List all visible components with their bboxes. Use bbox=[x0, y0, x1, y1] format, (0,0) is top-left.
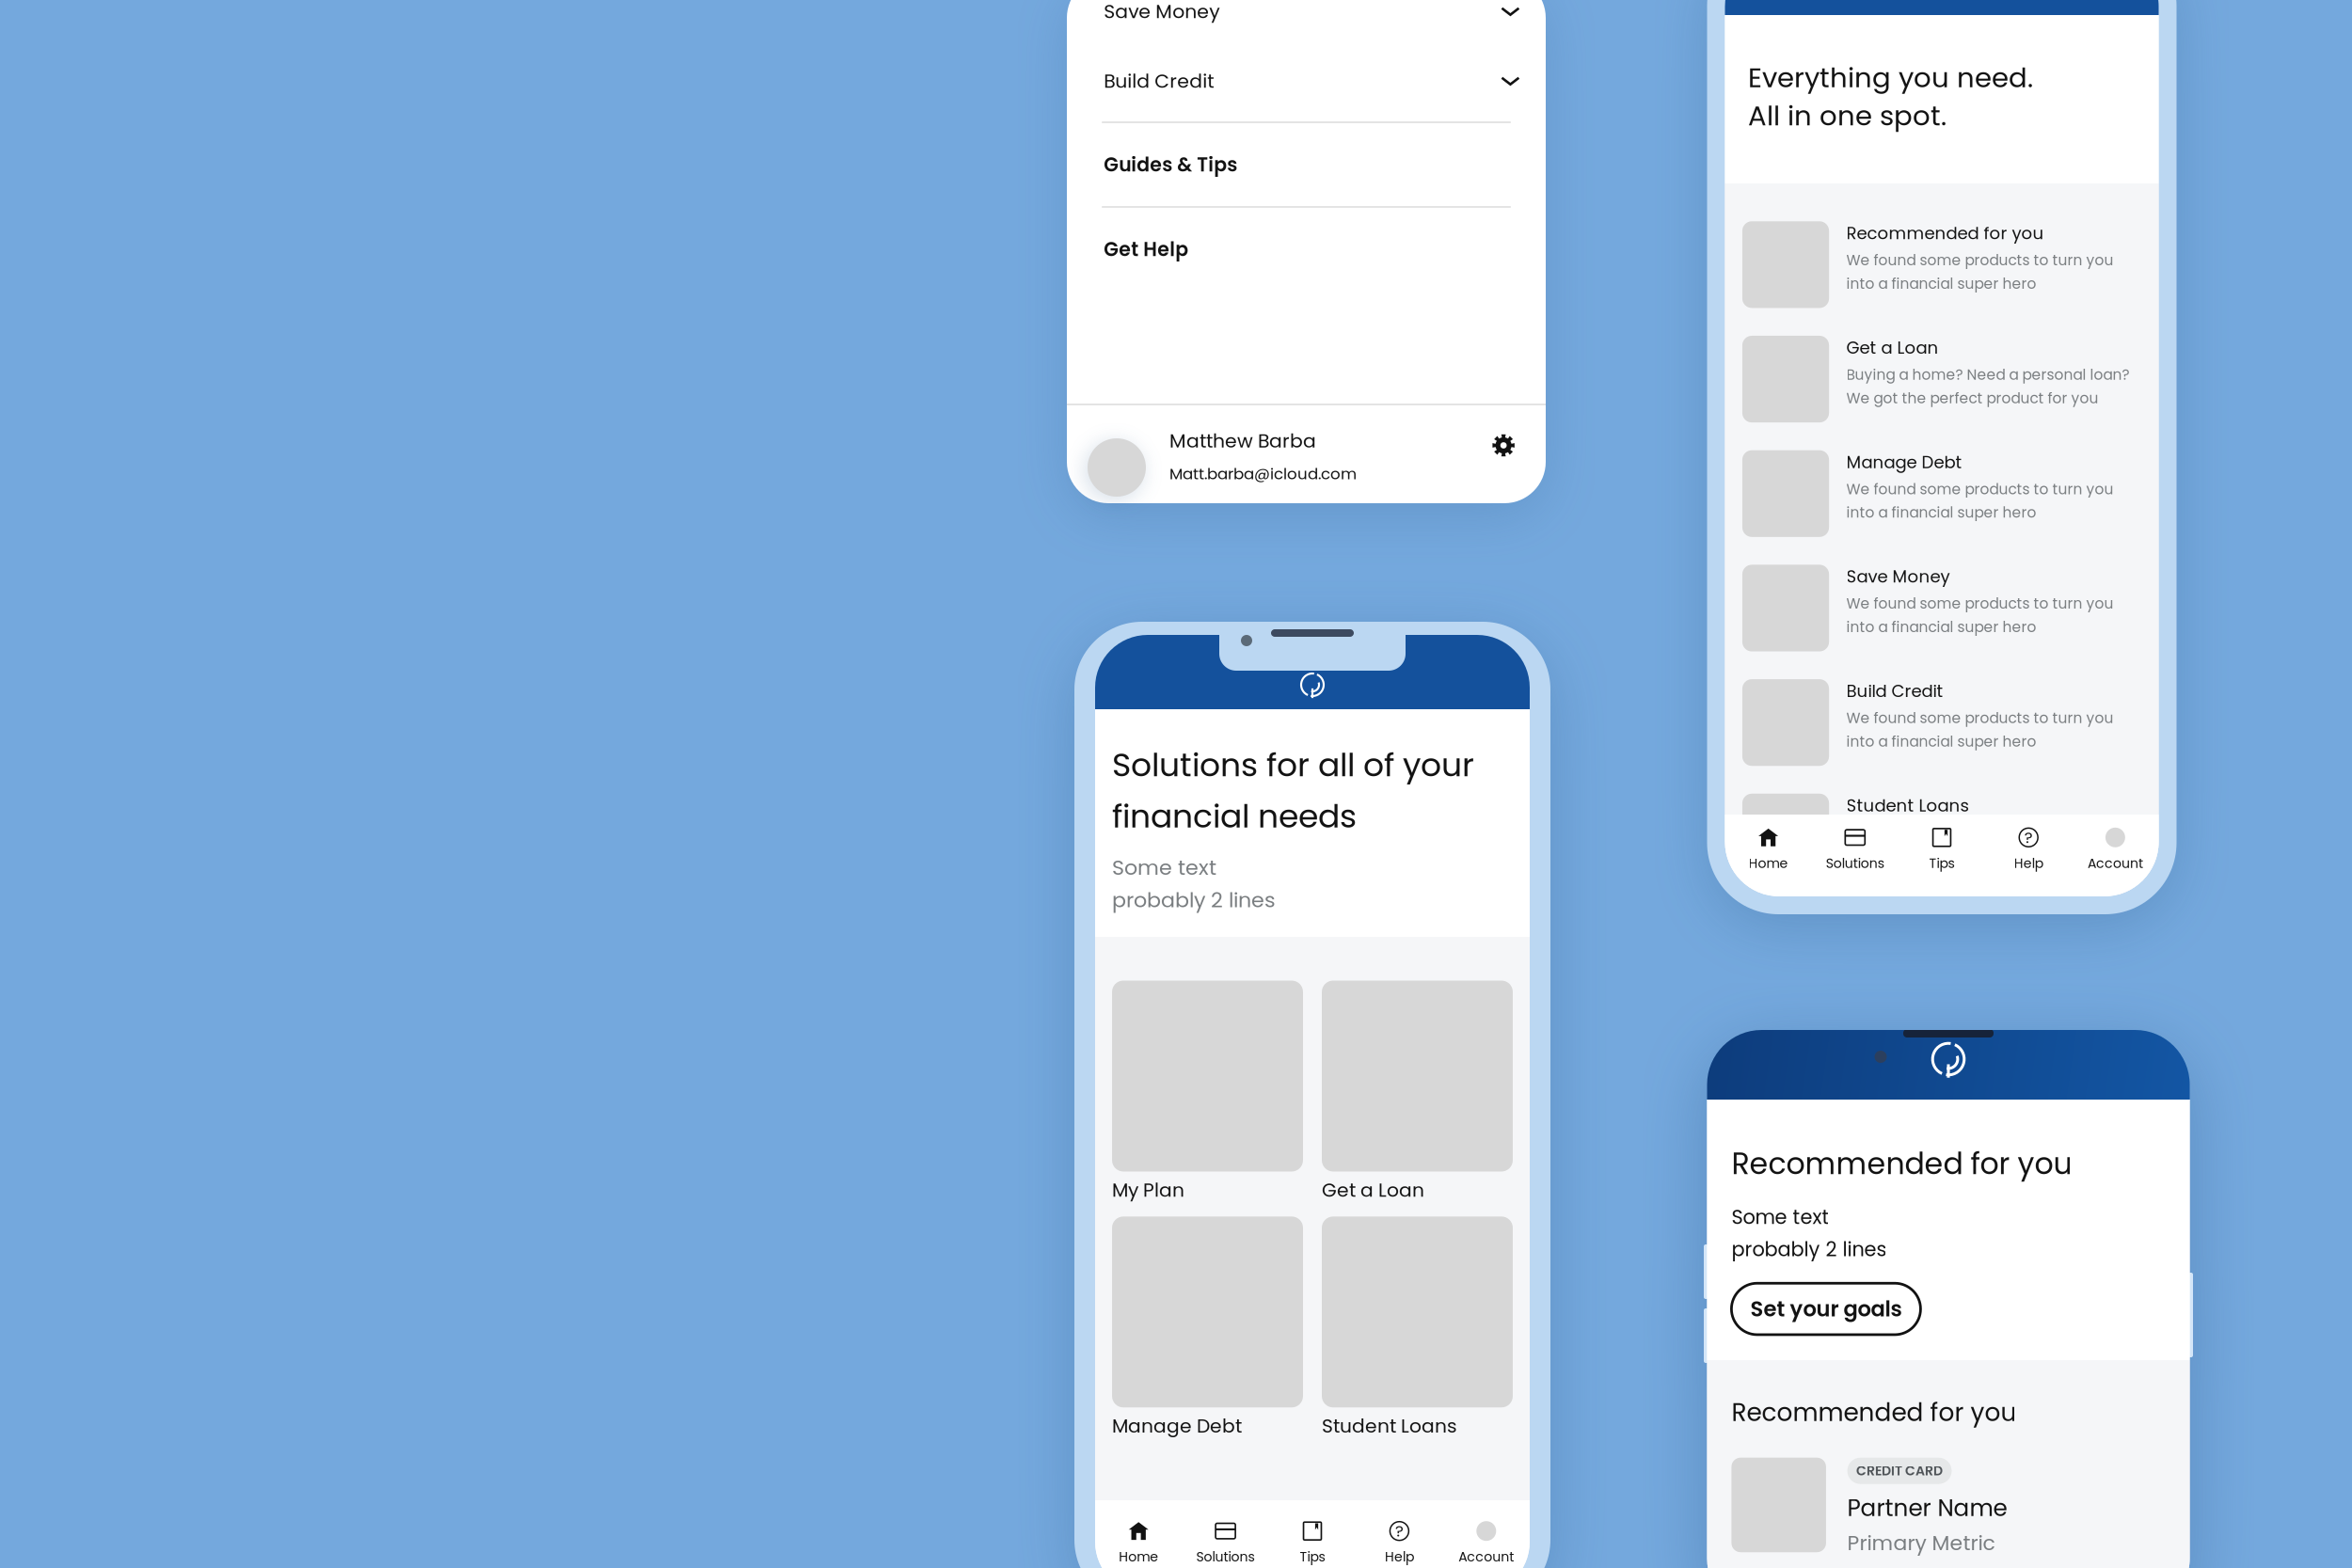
staticText: We found some products to turn you bbox=[1846, 250, 2114, 270]
staticText: Solutions for all of your bbox=[1112, 742, 1474, 788]
staticText: All in one spot. bbox=[1748, 97, 1946, 135]
button[interactable]: Tips bbox=[1898, 828, 1985, 872]
button[interactable]: Set your goals bbox=[1731, 1283, 1921, 1335]
staticText: into a financial super hero bbox=[1846, 731, 2036, 752]
staticText: Save Money bbox=[1104, 0, 1219, 25]
staticText: My Plan bbox=[1112, 1177, 1184, 1203]
staticText: Help bbox=[1385, 1548, 1414, 1566]
button[interactable]: Get a Loan bbox=[1322, 981, 1513, 1203]
staticText: Primary Metric bbox=[1847, 1528, 1995, 1557]
staticText: Save Money bbox=[1846, 565, 1950, 589]
staticText: probably 2 lines bbox=[1112, 885, 1276, 914]
button[interactable]: Save Money bbox=[1067, 0, 1546, 46]
staticText: CREDIT CARD bbox=[1856, 1462, 1943, 1480]
button[interactable]: Build Credit bbox=[1725, 665, 2159, 780]
staticText: Student Loans bbox=[1322, 1413, 1457, 1439]
staticText: probably 2 lines bbox=[1731, 1235, 1887, 1263]
button[interactable]: Student Loans bbox=[1322, 1216, 1513, 1439]
staticText: into a financial super hero bbox=[1846, 502, 2036, 523]
staticText: Guides & Tips bbox=[1104, 151, 1237, 178]
staticText: Student Loans bbox=[1846, 794, 1969, 817]
staticText: Recommended for you bbox=[1731, 1395, 2017, 1430]
button[interactable]: Solutions bbox=[1812, 828, 1898, 872]
button[interactable]: Settings bbox=[1478, 405, 1529, 471]
staticText: ? bbox=[1395, 1520, 1404, 1542]
button[interactable]: Manage Debt bbox=[1725, 436, 2159, 551]
button[interactable]: ? bbox=[1985, 828, 2072, 872]
staticText: We found some products to turn you bbox=[1846, 594, 2114, 614]
button[interactable]: Tips bbox=[1269, 1521, 1356, 1566]
button[interactable]: Guides & Tips bbox=[1067, 123, 1546, 206]
staticText: Build Credit bbox=[1846, 679, 1943, 703]
staticText: Tips bbox=[1929, 854, 1955, 872]
button[interactable]: Account bbox=[2072, 828, 2159, 872]
staticText: Everything you need. bbox=[1748, 58, 2033, 97]
staticText: Get a Loan bbox=[1846, 336, 1939, 360]
staticText: We got the perfect product for you bbox=[1846, 388, 2099, 408]
staticText: Recommended for you bbox=[1846, 221, 2044, 245]
staticText: We found some products to turn you bbox=[1846, 708, 2114, 728]
button[interactable]: Get Help bbox=[1067, 208, 1546, 291]
staticText: Home bbox=[1119, 1548, 1158, 1566]
button[interactable]: Account bbox=[1443, 1521, 1530, 1566]
button[interactable]: Home bbox=[1095, 1521, 1182, 1566]
staticText: Partner Name bbox=[1847, 1492, 2007, 1524]
staticText: Get a Loan bbox=[1322, 1177, 1424, 1203]
staticText: We found some products to turn you bbox=[1846, 822, 2114, 843]
button[interactable]: Get a Loan bbox=[1725, 322, 2159, 436]
staticText: Account bbox=[1459, 1548, 1514, 1566]
button[interactable]: Student Loans bbox=[1725, 780, 2159, 894]
staticText: Buying a home? Need a personal loan? bbox=[1846, 365, 2130, 385]
staticText: financial needs bbox=[1112, 794, 1357, 839]
button[interactable]: Save Money bbox=[1725, 551, 2159, 665]
staticText: Set your goals bbox=[1750, 1294, 1902, 1324]
staticText: Solutions bbox=[1826, 854, 1884, 872]
staticText: Home bbox=[1749, 854, 1788, 872]
staticText: into a financial super hero bbox=[1846, 274, 2036, 294]
staticText: Account bbox=[2088, 854, 2143, 872]
staticText: Build Credit bbox=[1104, 67, 1214, 94]
button[interactable]: ? bbox=[1356, 1521, 1443, 1566]
staticText: Some text bbox=[1731, 1203, 1829, 1231]
button[interactable]: Solutions bbox=[1182, 1521, 1269, 1566]
button[interactable]: Matthew Barba bbox=[1067, 405, 1357, 499]
staticText: Help bbox=[2014, 854, 2043, 872]
button[interactable]: Recommended for you bbox=[1725, 207, 2159, 322]
staticText: into a financial super hero bbox=[1846, 617, 2036, 637]
button[interactable]: Build Credit bbox=[1067, 46, 1546, 116]
staticText: Tips bbox=[1300, 1548, 1325, 1566]
button[interactable]: Home bbox=[1725, 828, 1812, 872]
button[interactable]: My Plan bbox=[1112, 981, 1303, 1203]
staticText: Matthew Barba bbox=[1169, 427, 1316, 454]
staticText: into a financial super hero bbox=[1846, 846, 2036, 866]
staticText: Solutions bbox=[1196, 1548, 1255, 1566]
staticText: Manage Debt bbox=[1112, 1413, 1242, 1439]
staticText: ? bbox=[2024, 826, 2033, 849]
staticText: Recommended for you bbox=[1731, 1143, 2072, 1185]
staticText: Some text bbox=[1112, 853, 1216, 882]
button[interactable]: Manage Debt bbox=[1112, 1216, 1303, 1439]
staticText: We found some products to turn you bbox=[1846, 479, 2114, 499]
staticText: Get Help bbox=[1104, 236, 1188, 263]
staticText: Matt.barba@icloud.com bbox=[1169, 463, 1357, 485]
staticText: Manage Debt bbox=[1846, 450, 1962, 474]
